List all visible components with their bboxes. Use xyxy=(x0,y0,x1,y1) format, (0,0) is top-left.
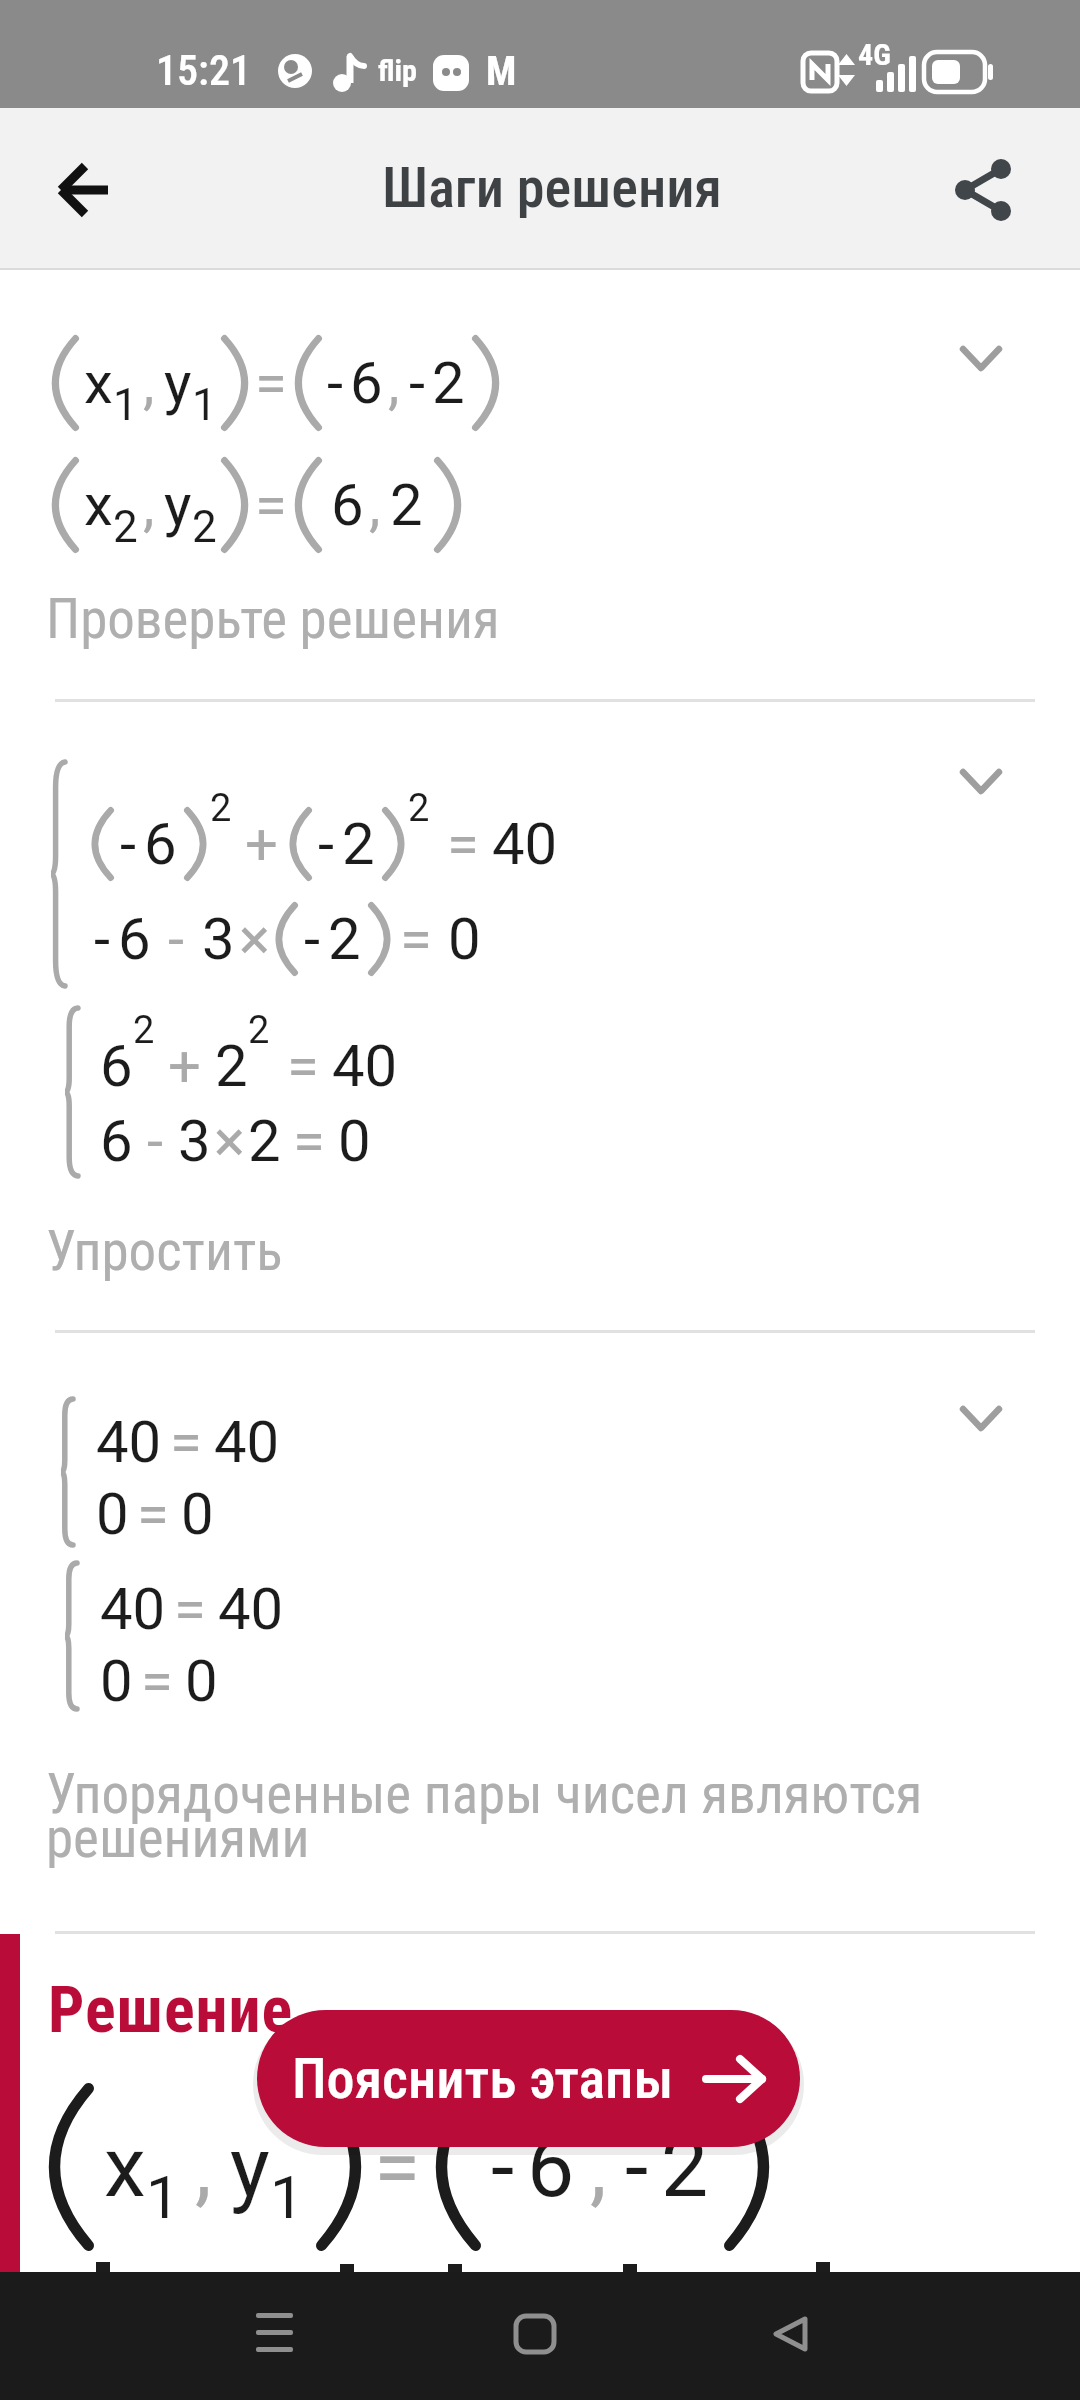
staticText: 0 xyxy=(100,1647,133,1715)
staticText: , xyxy=(590,2118,607,2216)
staticText: - xyxy=(409,349,426,417)
staticText: - xyxy=(94,905,111,973)
staticText: Проверьте решения xyxy=(46,587,500,651)
staticText: , xyxy=(388,349,400,417)
staticText: x xyxy=(84,349,113,417)
staticText: 6 xyxy=(100,1107,133,1175)
staticText: 0 xyxy=(448,905,481,973)
staticText: 2 xyxy=(192,501,217,553)
staticText: M xyxy=(486,48,517,95)
staticText: Шаги решения xyxy=(382,155,722,221)
staticText: = xyxy=(293,1107,325,1175)
staticText: = xyxy=(400,905,432,973)
staticText: = xyxy=(255,471,287,539)
staticText: , xyxy=(143,471,155,539)
staticText: - xyxy=(318,810,335,878)
staticText: 6 xyxy=(100,1032,133,1100)
staticText: + xyxy=(168,1032,201,1100)
staticText: y xyxy=(164,349,192,417)
staticText: 15:21 xyxy=(156,46,252,95)
staticText: y xyxy=(230,2118,270,2216)
staticText: 0 xyxy=(338,1107,371,1175)
staticText: × xyxy=(214,1107,245,1175)
staticText: - xyxy=(120,810,137,878)
staticText: - xyxy=(327,349,344,417)
staticText: 6 xyxy=(331,471,364,539)
staticText: 0 xyxy=(96,1480,129,1548)
staticText: 0 xyxy=(185,1647,218,1715)
staticText: = xyxy=(174,1575,206,1643)
staticText: - xyxy=(304,905,321,973)
staticText: = xyxy=(137,1480,169,1548)
staticText: 2 xyxy=(215,1032,248,1100)
staticText: x xyxy=(84,471,113,539)
staticText: 40 xyxy=(492,810,558,878)
staticText: - xyxy=(491,2118,515,2216)
staticText: = xyxy=(141,1647,173,1715)
staticText: 40 xyxy=(214,1408,280,1476)
staticText: 0 xyxy=(181,1480,214,1548)
staticText: - xyxy=(625,2118,649,2216)
staticText: 2 xyxy=(248,1107,281,1175)
staticText: решениями xyxy=(46,1806,310,1870)
staticText: 2 xyxy=(328,905,361,973)
staticText: 2 xyxy=(390,471,423,539)
staticText: 4G xyxy=(858,37,891,72)
staticText: 6 xyxy=(118,905,151,973)
staticText: Решение xyxy=(48,1973,294,2048)
staticText: y xyxy=(164,471,192,539)
staticText: Упростить xyxy=(46,1219,283,1283)
staticText: - xyxy=(147,1107,164,1175)
staticText: 6 xyxy=(144,810,177,878)
staticText: 2 xyxy=(113,501,138,553)
staticText: 40 xyxy=(96,1408,162,1476)
staticText: = xyxy=(287,1032,319,1100)
staticText: 2 xyxy=(661,2118,709,2216)
staticText: , xyxy=(143,349,155,417)
staticText: 6 xyxy=(527,2118,575,2216)
staticText: - xyxy=(168,905,185,973)
staticText: 40 xyxy=(100,1575,166,1643)
staticText: flip xyxy=(378,53,417,88)
staticText: , xyxy=(369,471,381,539)
staticText: = xyxy=(255,349,287,417)
staticText: + xyxy=(245,810,278,878)
staticText: = xyxy=(447,810,479,878)
staticText: Упорядоченные пары чисел являются xyxy=(46,1762,923,1826)
staticText: 3 xyxy=(202,905,235,973)
staticText: × xyxy=(239,905,270,973)
staticText: 2 xyxy=(248,1008,270,1053)
staticText: 1 xyxy=(192,379,217,431)
staticText: = xyxy=(374,2118,421,2216)
staticText: 3 xyxy=(178,1107,211,1175)
staticText: 1 xyxy=(113,379,138,431)
staticText: 6 xyxy=(350,349,383,417)
staticText: 2 xyxy=(432,349,465,417)
staticText: 1 xyxy=(146,2162,180,2232)
staticText: 2 xyxy=(210,786,232,831)
staticText: 1 xyxy=(270,2162,304,2232)
staticText: 40 xyxy=(332,1032,398,1100)
staticText: , xyxy=(195,2118,212,2216)
staticText: 2 xyxy=(133,1008,155,1053)
staticText: 40 xyxy=(218,1575,284,1643)
staticText: x xyxy=(104,2118,146,2216)
staticText: Пояснить этапы xyxy=(292,2046,674,2112)
staticText: 2 xyxy=(408,786,430,831)
staticText: = xyxy=(170,1408,202,1476)
staticText: 2 xyxy=(342,810,375,878)
